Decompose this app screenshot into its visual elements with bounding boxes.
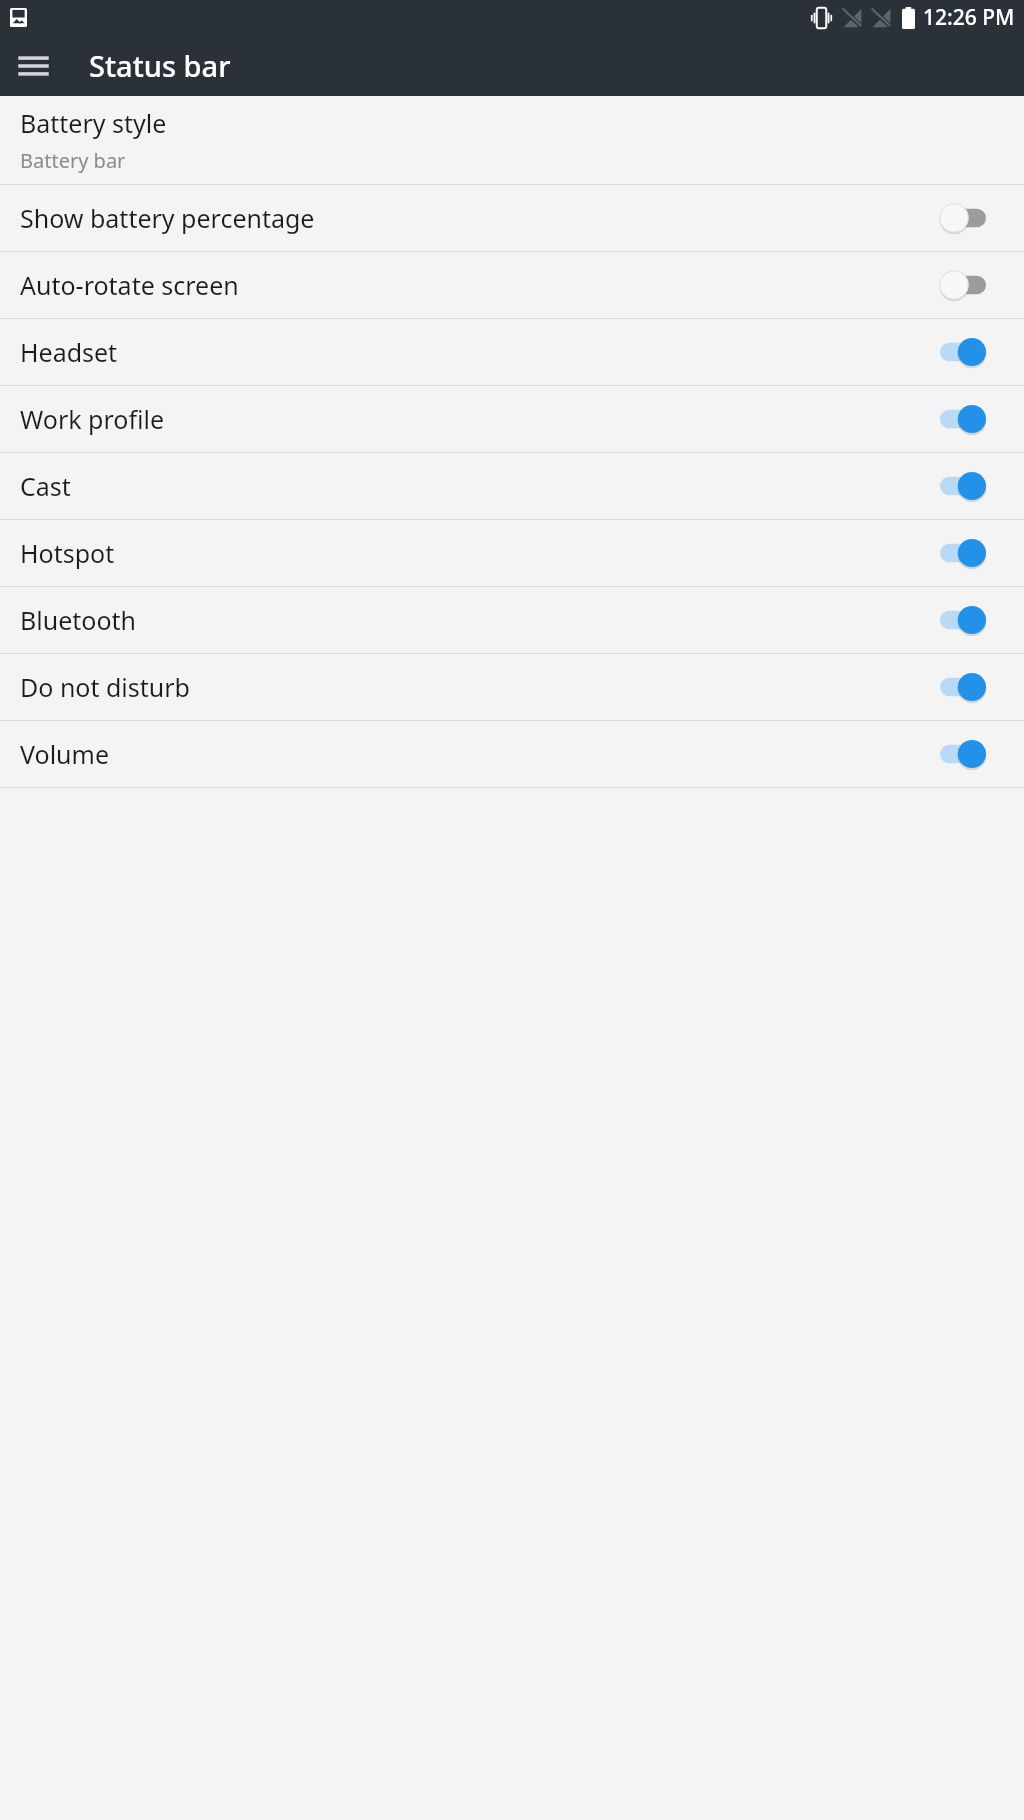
- button[interactable]: Hotspot: [0, 520, 1024, 586]
- staticText: Volume: [20, 737, 940, 771]
- staticText: Cast: [20, 469, 940, 503]
- button[interactable]: Do not disturb: [0, 654, 1024, 720]
- button[interactable]: Show battery percentage: [0, 185, 1024, 251]
- staticText: Show battery percentage: [20, 201, 940, 235]
- staticText: Battery bar: [20, 147, 126, 174]
- staticText: 12:26 PM: [923, 3, 1015, 32]
- button[interactable]: Volume: [0, 721, 1024, 787]
- staticText: Hotspot: [20, 536, 940, 570]
- button[interactable]: Headset: [0, 319, 1024, 385]
- staticText: Headset: [20, 335, 940, 369]
- staticText: Work profile: [20, 402, 940, 436]
- staticText: Bluetooth: [20, 603, 940, 637]
- button[interactable]: Work profile: [0, 386, 1024, 452]
- button[interactable]: Battery style: [0, 96, 1024, 184]
- button[interactable]: Cast: [0, 453, 1024, 519]
- staticText: Battery style: [20, 106, 167, 140]
- button[interactable]: Auto-rotate screen: [0, 252, 1024, 318]
- staticText: Auto-rotate screen: [20, 268, 940, 302]
- staticText: Do not disturb: [20, 670, 940, 704]
- button[interactable]: Bluetooth: [0, 587, 1024, 653]
- button[interactable]: Open navigation menu: [11, 44, 55, 88]
- staticText: Status bar: [89, 46, 231, 85]
